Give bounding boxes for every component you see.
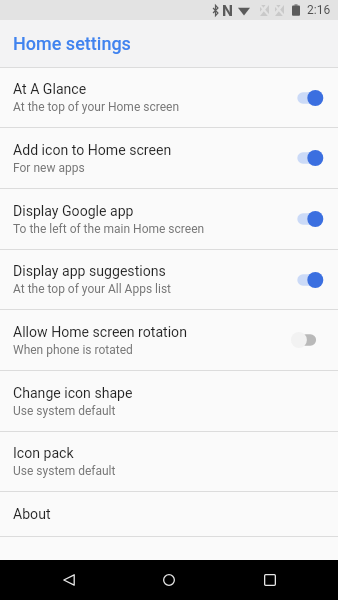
staticText: Display Google app bbox=[13, 203, 134, 220]
button[interactable]: Add icon to Home screen bbox=[0, 128, 338, 189]
button[interactable]: About bbox=[0, 492, 338, 537]
staticText: To the left of the main Home screen bbox=[13, 222, 205, 236]
staticText: At the top of your Home screen bbox=[13, 100, 180, 114]
button[interactable]: Back bbox=[47, 560, 90, 600]
button[interactable]: Allow Home screen rotation bbox=[0, 310, 338, 371]
button[interactable]: Home bbox=[147, 560, 190, 600]
staticText: Display app suggestions bbox=[13, 263, 166, 280]
staticText: When phone is rotated bbox=[13, 343, 133, 357]
button[interactable]: Recents bbox=[248, 560, 291, 600]
staticText: Allow Home screen rotation bbox=[13, 324, 187, 341]
button[interactable]: Display app suggestions bbox=[0, 250, 338, 310]
staticText: At A Glance bbox=[13, 81, 87, 98]
staticText: Add icon to Home screen bbox=[13, 142, 172, 159]
staticText: Use system default bbox=[13, 464, 116, 478]
button[interactable]: At A Glance bbox=[0, 68, 338, 128]
staticText: Home settings bbox=[13, 33, 131, 54]
button[interactable]: Change icon shape bbox=[0, 371, 338, 432]
staticText: At the top of your All Apps list bbox=[13, 282, 172, 296]
button[interactable]: Icon pack bbox=[0, 432, 338, 492]
button[interactable]: Display Google app bbox=[0, 189, 338, 250]
staticText: Use system default bbox=[13, 404, 116, 418]
staticText: Icon pack bbox=[13, 445, 74, 462]
staticText: For new apps bbox=[13, 161, 85, 175]
staticText: About bbox=[13, 506, 51, 523]
staticText: 2:16 bbox=[307, 3, 331, 17]
staticText: Change icon shape bbox=[13, 385, 133, 402]
